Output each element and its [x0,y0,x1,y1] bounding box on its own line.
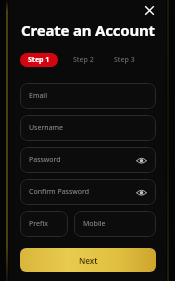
staticText: Mobile [83,219,148,229]
staticText: Confirm Password [29,187,134,197]
staticText: Create an Account [20,20,156,40]
button[interactable]: Close [140,1,158,19]
button[interactable]: Email [20,83,156,109]
staticText: Step 3 [114,55,135,65]
button[interactable]: Step 3 [111,53,138,67]
button[interactable]: Username [20,115,156,141]
staticText: Email [29,91,148,101]
button[interactable]: Prefix [20,211,68,237]
staticText: Username [29,123,148,133]
button[interactable]: Password [20,147,156,173]
staticText: Step 2 [73,55,94,65]
staticText: Next [79,255,98,266]
staticText: Password [29,155,134,165]
button[interactable]: Mobile [74,211,156,237]
staticText: Step 1 [28,55,50,65]
button[interactable]: Step 2 [70,53,97,67]
button[interactable]: Step 1 [20,53,58,67]
button[interactable]: Next [20,248,156,272]
button[interactable]: Confirm Password [20,179,156,205]
staticText: Prefix [29,219,60,229]
button[interactable]: Show password [134,153,148,167]
button[interactable]: Show password [134,185,148,199]
